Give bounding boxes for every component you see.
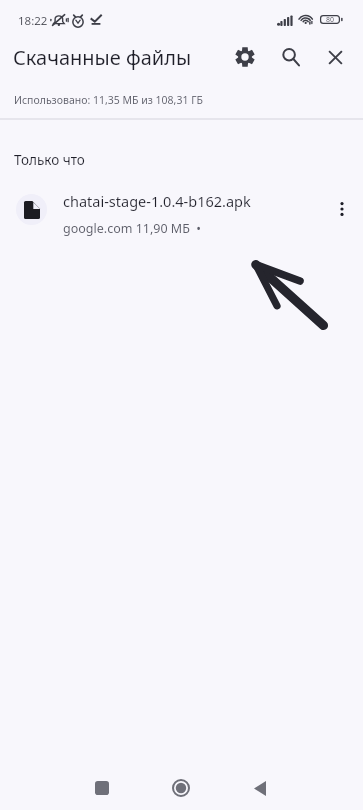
button[interactable]: chatai-stage-1.0.4-b162.apk <box>0 184 363 234</box>
staticText: google.com 11,90 МБ • <box>63 220 202 237</box>
button[interactable]: Search <box>270 36 312 78</box>
button[interactable]: Settings <box>224 36 266 78</box>
staticText: Только что <box>14 151 85 169</box>
button[interactable]: Recents <box>80 766 124 810</box>
button[interactable]: Back <box>238 766 282 810</box>
staticText: chatai-stage-1.0.4-b162.apk <box>63 191 251 211</box>
staticText: 18:22 <box>18 13 48 29</box>
staticText: Использовано: 11,35 МБ из 108,31 ГБ <box>14 93 203 107</box>
staticText: Скачанные файлы <box>13 44 192 71</box>
button[interactable]: Close <box>314 36 356 78</box>
button[interactable]: More options <box>321 188 363 230</box>
staticText: 80 <box>326 15 335 24</box>
button[interactable]: Home <box>159 766 203 810</box>
